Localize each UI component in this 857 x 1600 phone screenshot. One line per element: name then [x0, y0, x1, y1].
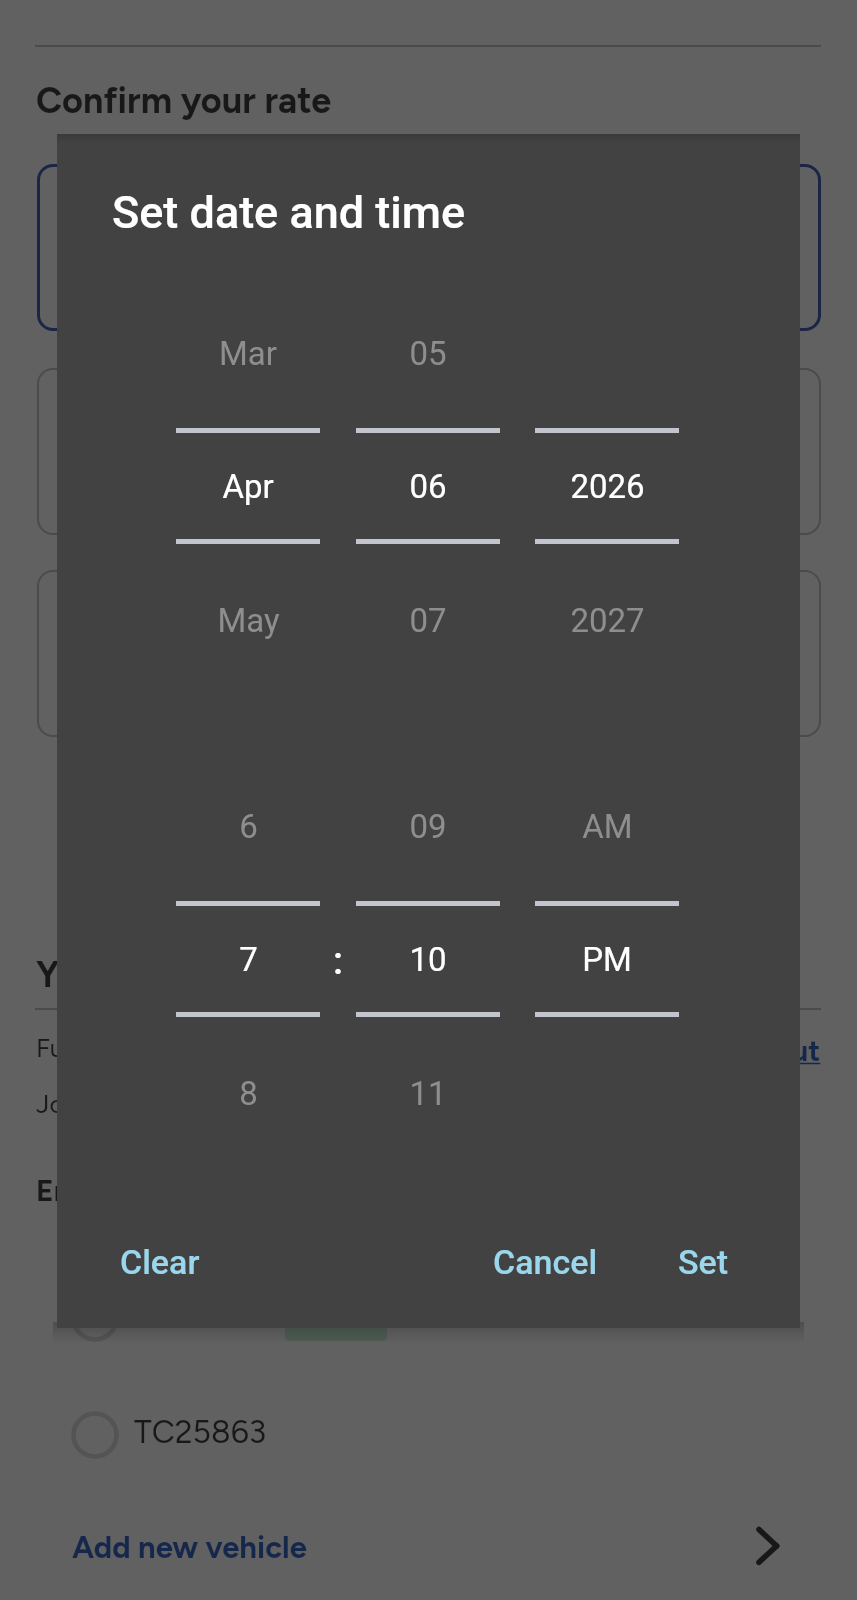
button[interactable]: 2027 [535, 585, 679, 655]
button[interactable]: TC25863 [56, 1395, 616, 1475]
staticText: AM [582, 807, 633, 846]
staticText: 8 [239, 1074, 258, 1113]
button[interactable]: 11 [356, 1058, 500, 1128]
button[interactable]: 09 [356, 791, 500, 861]
staticText: 2027 [570, 601, 645, 640]
button[interactable]: AM [535, 791, 679, 861]
button[interactable]: PM [535, 924, 679, 994]
button[interactable]: Set [656, 1229, 707, 1295]
staticText: TC25863 [134, 1413, 267, 1451]
staticText: 09 [409, 807, 447, 846]
button[interactable]: 2026 [535, 451, 679, 521]
staticText: 10 [409, 940, 447, 979]
staticText: 06 [409, 467, 447, 506]
staticText: Clear [120, 1242, 200, 1282]
button[interactable] [37, 368, 821, 535]
button[interactable]: 8 [176, 1058, 320, 1128]
staticText: Jonathan Hill [36, 1088, 188, 1119]
button[interactable]: May [176, 585, 320, 655]
staticText: Set [678, 1242, 729, 1282]
staticText: 2026 [570, 467, 645, 506]
button[interactable]: Open vehicle list [728, 1506, 808, 1586]
staticText: : [333, 939, 344, 984]
staticText: 05 [409, 334, 447, 373]
staticText: Confirm your rate [36, 79, 332, 122]
staticText: Apr [222, 467, 274, 506]
button[interactable]: 6 [176, 791, 320, 861]
button[interactable]: Cancel [471, 1229, 576, 1295]
staticText: Your details [36, 953, 230, 996]
staticText: May [217, 601, 280, 640]
button[interactable] [37, 570, 821, 737]
staticText: 6 [239, 807, 258, 846]
staticText: PM [582, 940, 632, 979]
staticText: Full name [36, 1032, 147, 1063]
button[interactable] [56, 1278, 616, 1358]
staticText: 11 [409, 1074, 447, 1113]
button[interactable] [37, 164, 821, 331]
button[interactable]: 06 [356, 451, 500, 521]
button[interactable]: Add new vehicle [72, 1529, 307, 1566]
staticText: Set date and time [112, 186, 466, 239]
button[interactable]: Mar [176, 318, 320, 388]
staticText: Cancel [493, 1242, 598, 1282]
staticText: Log out [715, 1032, 821, 1068]
staticText: Email [36, 1172, 112, 1208]
button[interactable]: 07 [356, 585, 500, 655]
button[interactable]: Clear [98, 1229, 178, 1295]
button[interactable]: 10 [356, 924, 500, 994]
button[interactable]: 05 [356, 318, 500, 388]
button[interactable]: Log out [560, 1028, 821, 1072]
button[interactable]: Apr [176, 451, 320, 521]
staticText: Mar [219, 334, 277, 373]
staticText: 7 [239, 940, 258, 979]
staticText: 07 [409, 601, 447, 640]
button[interactable]: 7 [176, 924, 320, 994]
